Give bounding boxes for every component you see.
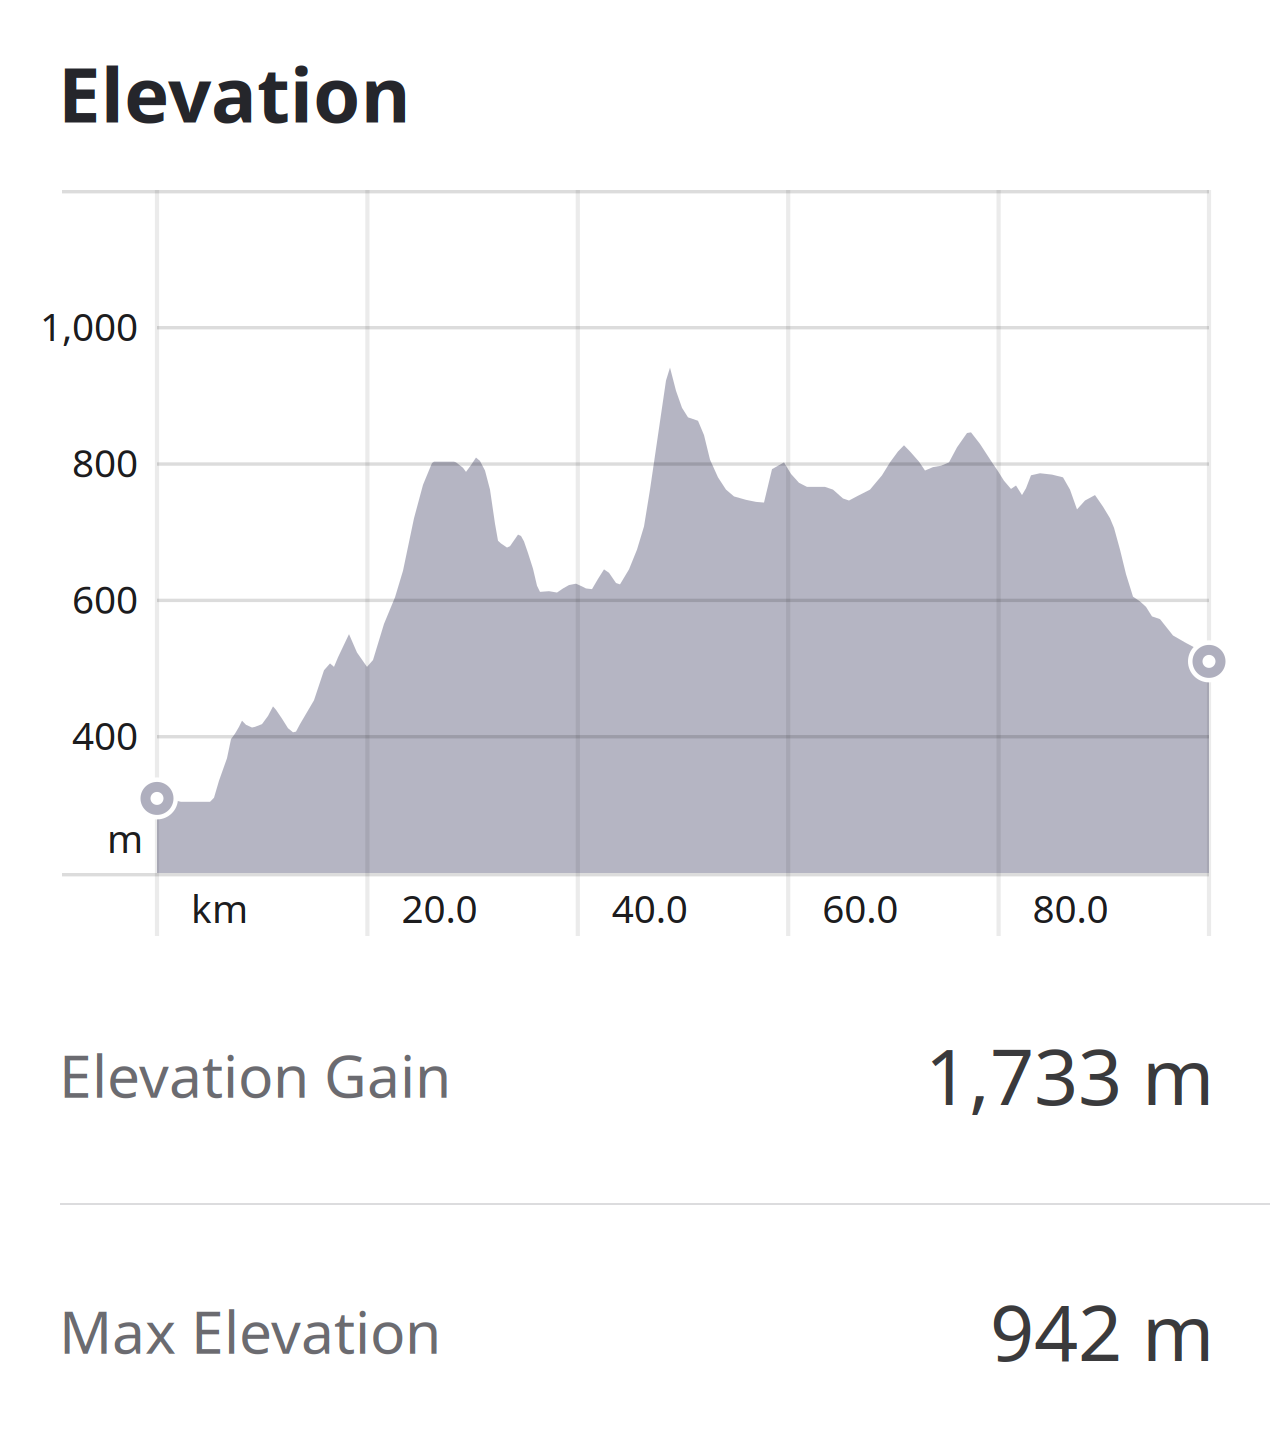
staticText: 1,000 <box>40 300 138 352</box>
staticText: Elevation <box>58 42 410 143</box>
staticText: 20.0 <box>401 882 477 934</box>
staticText: 60.0 <box>822 882 898 934</box>
staticText: 600 <box>72 573 138 624</box>
button[interactable]: Max Elevation <box>0 1251 1270 1411</box>
staticText: 1,733 m <box>925 1024 1214 1126</box>
staticText: 800 <box>72 437 138 488</box>
button[interactable]: Elevation Gain <box>0 995 1270 1155</box>
staticText: Elevation Gain <box>59 1036 451 1114</box>
staticText: Max Elevation <box>59 1292 441 1370</box>
staticText: 942 m <box>990 1280 1214 1382</box>
staticText: m <box>107 812 143 864</box>
staticText: 400 <box>72 709 138 761</box>
staticText: 80.0 <box>1033 882 1109 934</box>
staticText: km <box>191 882 248 934</box>
staticText: 40.0 <box>612 882 688 934</box>
